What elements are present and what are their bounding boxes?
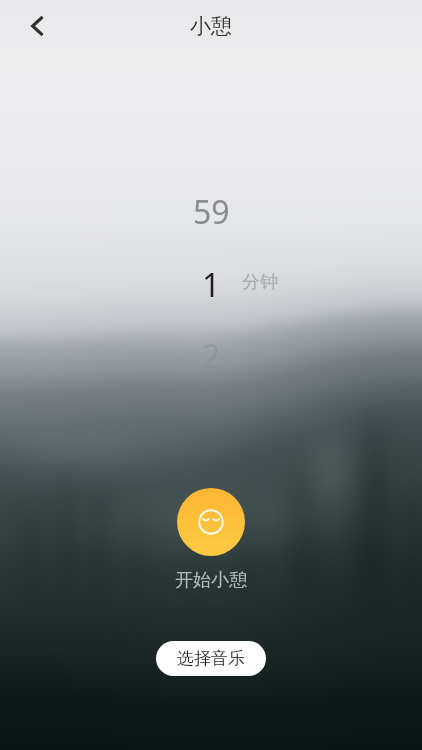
staticText: 1 [202, 263, 221, 307]
staticText: 开始小憩 [175, 569, 247, 592]
staticText: 2 [202, 334, 221, 378]
staticText: 59 [193, 190, 230, 234]
button[interactable]: 开始小憩 [177, 488, 245, 556]
button[interactable]: Back [13, 2, 61, 50]
staticText: 分钟 [242, 271, 278, 294]
staticText: 小憩 [190, 13, 232, 39]
staticText: 选择音乐 [177, 648, 245, 669]
button[interactable]: 选择音乐 [156, 641, 266, 676]
